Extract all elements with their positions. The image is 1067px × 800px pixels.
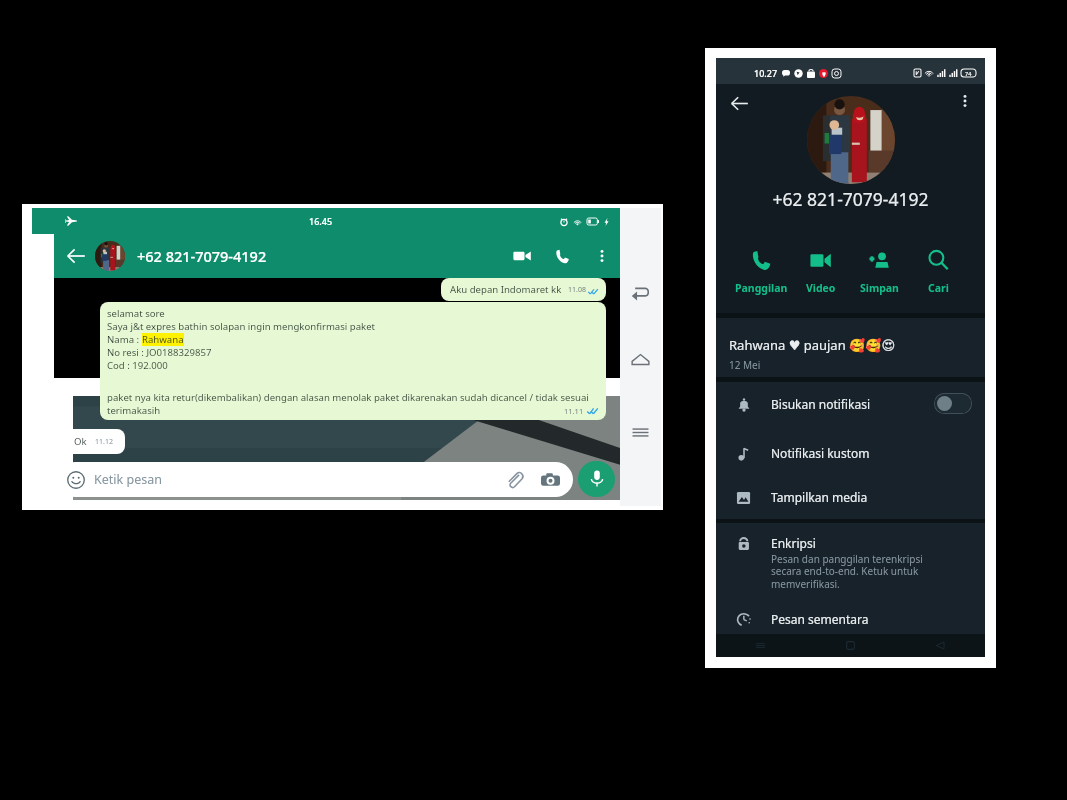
- staticText: 74: [965, 70, 972, 77]
- staticText: terimakasih: [107, 404, 161, 417]
- staticText: Rahwana ♥ paujan 🥰🥰😍: [729, 336, 895, 354]
- button[interactable]: Enkripsi: [716, 523, 985, 601]
- staticText: +62 821-7079-4192: [137, 246, 267, 266]
- staticText: Pesan dan panggilan terenkripsi secara e…: [771, 552, 923, 591]
- button[interactable]: Home: [631, 350, 650, 369]
- staticText: 16.45: [309, 215, 333, 227]
- staticText: 10.27: [754, 67, 778, 79]
- button[interactable]: selamat sore: [100, 302, 606, 420]
- staticText: Cari: [928, 281, 949, 295]
- button[interactable]: Back: [631, 283, 650, 302]
- staticText: Panggilan: [735, 281, 788, 295]
- staticText: Saya j&t expres bathin solapan ingin men…: [107, 320, 376, 333]
- staticText: Ketik pesan: [94, 471, 162, 488]
- button[interactable]: [807, 96, 895, 184]
- other: Attach: [505, 470, 524, 489]
- staticText: Aku depan Indomaret kk: [450, 283, 562, 296]
- staticText: paket nya kita retur(dikembalikan) denga…: [107, 391, 589, 404]
- button[interactable]: Back: [722, 86, 756, 120]
- other: Camera: [541, 472, 560, 488]
- other: Back: [66, 246, 86, 266]
- button[interactable]: Pesan sementara: [716, 601, 985, 634]
- staticText: Rahwana: [142, 333, 184, 346]
- staticText: Pesan sementara: [771, 611, 869, 626]
- staticText: 11.12: [95, 437, 113, 447]
- button[interactable]: Recents: [631, 423, 650, 442]
- staticText: No resi : JO0188329857: [107, 346, 212, 359]
- button[interactable]: Panggilan: [732, 247, 791, 298]
- staticText: Cod : 192.000: [107, 359, 168, 372]
- staticText: Nama :: [107, 333, 142, 346]
- staticText: +62 821-7079-4192: [716, 187, 985, 211]
- button[interactable]: Voice message: [578, 461, 615, 497]
- button[interactable]: Ok: [61, 429, 125, 454]
- button[interactable]: Mute notifications toggle: [934, 393, 972, 414]
- staticText: 11.08: [568, 285, 586, 295]
- staticText: 11.11: [564, 406, 584, 416]
- button[interactable]: Rahwana ♥ paujan 🥰🥰😍: [716, 318, 985, 377]
- staticText: Bisukan notifikasi: [771, 396, 871, 412]
- button[interactable]: Simpan: [850, 247, 909, 298]
- other: More options: [595, 249, 609, 263]
- staticText: Ok: [74, 435, 87, 448]
- button[interactable]: Cari: [909, 247, 968, 298]
- staticText: selamat sore: [107, 307, 165, 320]
- staticText: Enkripsi: [771, 535, 816, 551]
- staticText: Video: [806, 281, 836, 295]
- button[interactable]: Back: [54, 234, 620, 278]
- other: Call: [555, 249, 570, 264]
- button[interactable]: Video: [791, 247, 850, 298]
- button[interactable]: Aku depan Indomaret kk: [441, 278, 606, 301]
- staticText: 12 Mei: [729, 358, 761, 372]
- button[interactable]: Bisukan notifikasi: [716, 382, 985, 431]
- button[interactable]: Notifikasi kustom: [716, 431, 985, 475]
- button[interactable]: Ketik pesan: [58, 462, 573, 497]
- button[interactable]: Tampilkan media: [716, 475, 985, 519]
- staticText: Notifikasi kustom: [771, 445, 870, 461]
- staticText: Simpan: [860, 281, 899, 295]
- other: Video call: [513, 249, 531, 263]
- button[interactable]: More options: [950, 86, 980, 116]
- staticText: Tampilkan media: [771, 489, 868, 505]
